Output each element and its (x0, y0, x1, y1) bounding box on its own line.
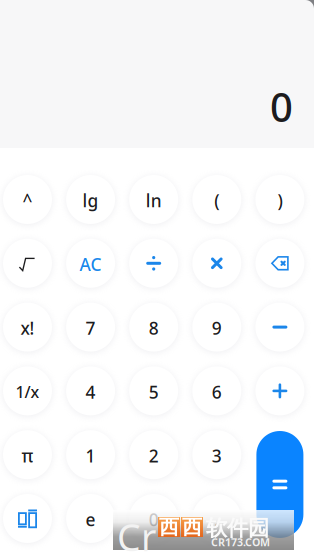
button[interactable]: ^ (3, 175, 52, 224)
button[interactable]: 3 (192, 430, 241, 479)
staticText: 3 (212, 444, 222, 467)
button[interactable] (3, 239, 52, 288)
button[interactable]: ln (129, 175, 178, 224)
button[interactable]: 1 (66, 430, 115, 479)
staticText: e (86, 508, 96, 531)
button[interactable] (256, 431, 303, 538)
button[interactable] (255, 239, 304, 288)
staticText: 6 (212, 380, 222, 403)
button[interactable]: ) (255, 175, 304, 224)
staticText: ^ (22, 189, 32, 212)
staticText: 1 (86, 444, 96, 467)
button[interactable]: . (192, 494, 241, 543)
staticText: 7 (86, 317, 96, 340)
button[interactable]: 9 (192, 303, 241, 352)
staticText: CR173.COM (211, 535, 270, 549)
staticText: 0 (149, 508, 159, 531)
button[interactable] (255, 366, 304, 415)
staticText: AC (80, 253, 102, 276)
staticText: ) (277, 189, 282, 212)
button[interactable]: 2 (129, 430, 178, 479)
staticText: 软件园 (206, 515, 269, 541)
button[interactable]: π (3, 430, 52, 479)
staticText: 西 (159, 515, 179, 539)
button[interactable] (192, 239, 241, 288)
button[interactable]: lg (66, 175, 115, 224)
button[interactable]: 0 (129, 494, 178, 543)
staticText: 4 (86, 380, 96, 403)
staticText: 1/x (15, 381, 39, 402)
staticText: π (21, 444, 33, 467)
button[interactable] (255, 303, 304, 352)
staticText: 2 (149, 444, 159, 467)
staticText: 西 (182, 515, 202, 539)
staticText: lg (83, 189, 99, 212)
button[interactable]: 8 (129, 303, 178, 352)
button[interactable]: 1/x (3, 366, 52, 415)
staticText: x! (20, 317, 34, 340)
button[interactable]: AC (66, 239, 115, 288)
button[interactable] (129, 239, 178, 288)
staticText: ln (146, 189, 162, 212)
staticText: 5 (149, 380, 159, 403)
button[interactable]: 4 (66, 366, 115, 415)
staticText: Cr (117, 512, 156, 560)
button[interactable]: e (66, 494, 115, 543)
staticText: 0 (270, 80, 293, 133)
staticText: ( (214, 189, 219, 212)
staticText: 8 (149, 317, 159, 340)
staticText: 9 (212, 317, 222, 340)
staticText: . (214, 508, 219, 531)
button[interactable] (3, 494, 52, 543)
button[interactable]: ( (192, 175, 241, 224)
button[interactable]: x! (3, 303, 52, 352)
button[interactable]: 7 (66, 303, 115, 352)
button[interactable]: 6 (192, 366, 241, 415)
button[interactable]: 5 (129, 366, 178, 415)
